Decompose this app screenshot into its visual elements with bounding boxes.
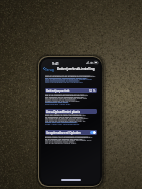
staticText: lagere waarde kan de prestaties: [45, 100, 80, 103]
staticText: de levensduur van de accu te verlengen.: [45, 117, 89, 120]
staticText: Terug: [45, 67, 54, 71]
staticText: Dit helpt bij langdurig gebruik aan de: [45, 120, 86, 123]
button[interactable]: Geoptimaliseerd Opladen: [45, 130, 97, 135]
staticText: met onderstaande instellingen. Bekijk me…: [45, 78, 93, 81]
staticText: lader. Meer over oplaadlimieten.: [45, 123, 80, 126]
button[interactable]: Accu-Oplaadlimiet plaats: [45, 109, 97, 114]
staticText: Accu-Oplaadlimiet plaats: [46, 110, 81, 114]
staticText: Geoptimaliseerd Opladen: [46, 131, 81, 135]
staticText: Batterijverbruik-instelling: [57, 67, 95, 71]
staticText: om te wachten met opladen tot boven 80%: [45, 139, 92, 142]
staticText: 52 %: [89, 89, 96, 93]
staticText: Batterijcapaciteit: [46, 89, 70, 93]
staticText: Houd de batterij van je apparaat in topc…: [45, 75, 96, 78]
other: Geoptimaliseerd opladen schakelaar: [90, 131, 96, 134]
staticText: iPhone leert van je dagelijkse oplaadrou…: [45, 136, 93, 139]
staticText: ten opzichte van de originele staat. Een: [45, 97, 88, 100]
staticText: Dit is de maximale capaciteit van je acc…: [45, 94, 89, 97]
button[interactable]: Terug: [43, 66, 54, 71]
staticText: 9:41: [52, 61, 59, 66]
staticText: over batterijgebruik en onderhoud.: [45, 81, 84, 84]
staticText: beinvloeden. Meer info.: [45, 103, 71, 106]
staticText: Stel een limiet in voor het opladen om: [45, 114, 87, 117]
button[interactable]: Batterijcapaciteit: [45, 88, 97, 93]
staticText: tot je de telefoon nodig hebt.: [45, 142, 77, 145]
